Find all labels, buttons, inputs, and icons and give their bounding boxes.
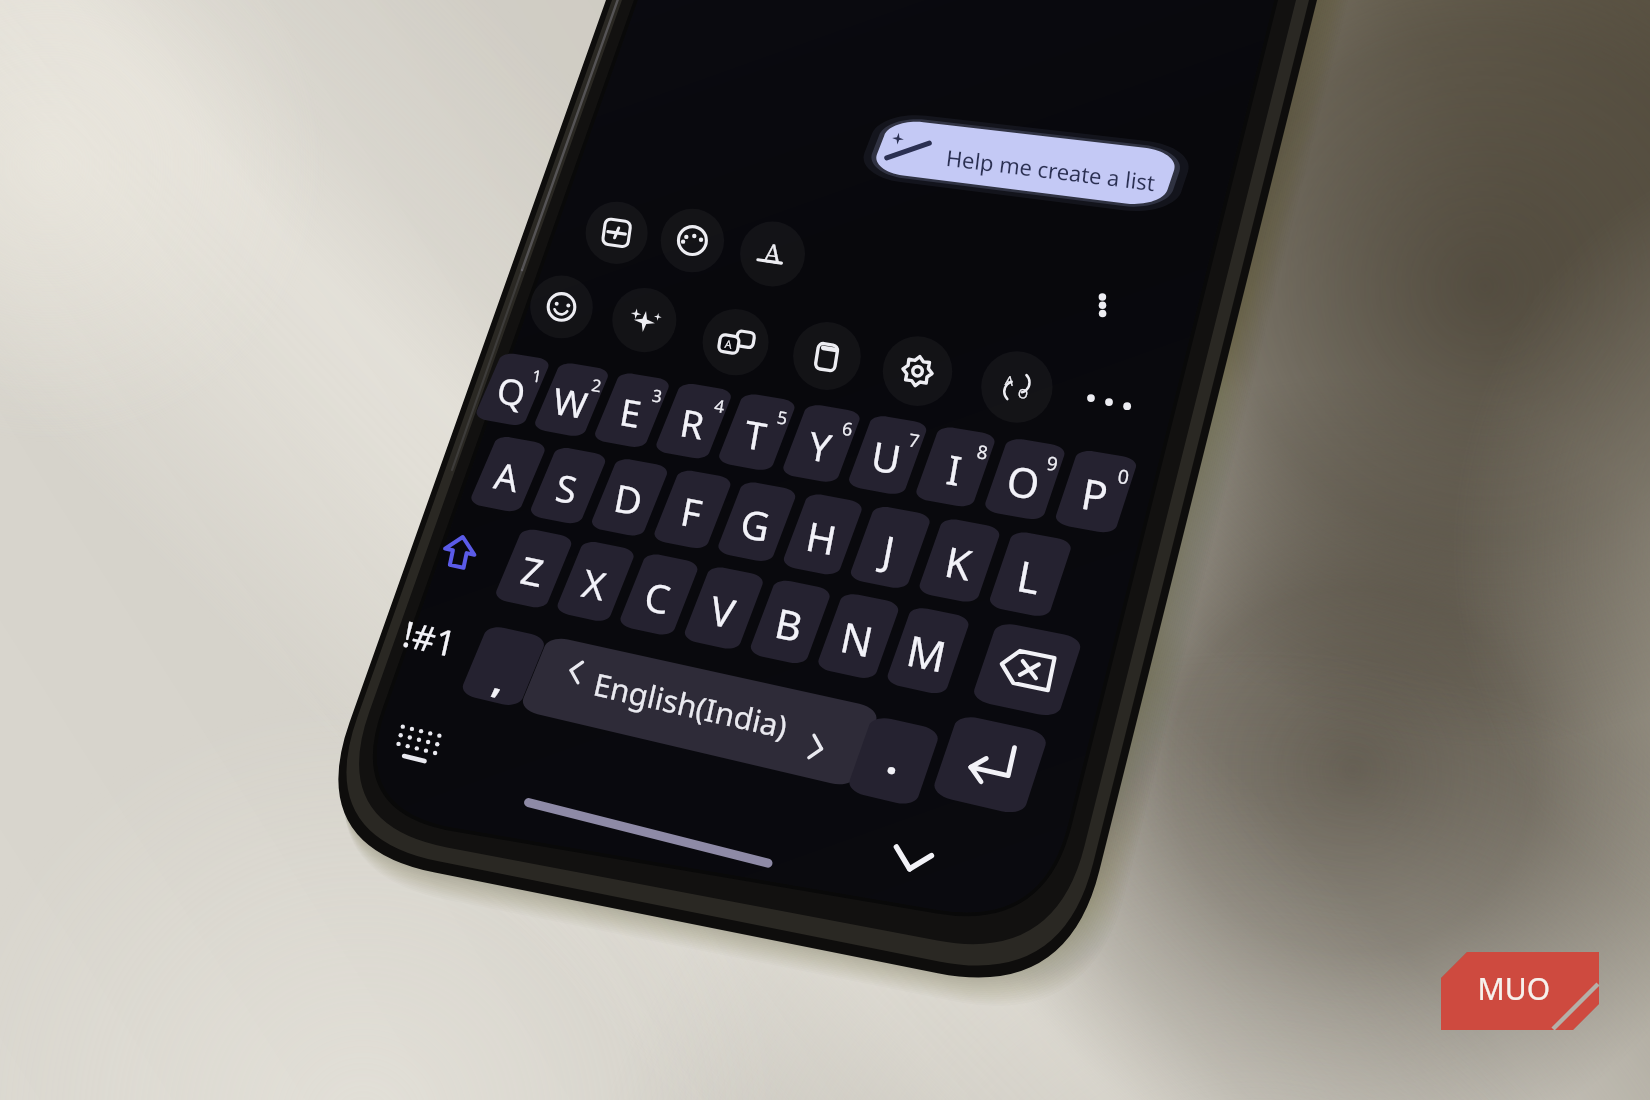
- button[interactable]: Backspace: [960, 620, 1080, 720]
- button[interactable]: Add content: [582, 200, 646, 264]
- button[interactable]: Home: [500, 780, 800, 870]
- button[interactable]: Shift: [420, 520, 492, 592]
- button[interactable]: Collapse keyboard: [862, 818, 962, 888]
- button[interactable]: AI suggestions: [612, 288, 676, 352]
- button[interactable]: Keyboard letters: [470, 350, 1130, 650]
- button[interactable]: Clipboard: [794, 324, 858, 388]
- button[interactable]: More options: [1072, 274, 1128, 338]
- button[interactable]: Settings: [886, 340, 950, 404]
- button[interactable]: MUO watermark: [1432, 944, 1608, 1040]
- button[interactable]: Help me create a list: [856, 108, 1184, 204]
- button[interactable]: Translate: [982, 354, 1046, 418]
- button[interactable]: Comma: [460, 620, 540, 710]
- button[interactable]: Emoji: [528, 276, 592, 340]
- button[interactable]: Text formatting: [742, 222, 806, 286]
- button[interactable]: Hide keyboard: [380, 710, 460, 780]
- button[interactable]: Image translate: [702, 310, 766, 374]
- button[interactable]: Symbols: [386, 604, 464, 672]
- button[interactable]: Period: [848, 712, 936, 800]
- button[interactable]: Themes: [660, 208, 724, 272]
- button[interactable]: Space, English (India): [540, 640, 900, 770]
- button[interactable]: More keyboard options: [1078, 372, 1138, 420]
- button[interactable]: Enter: [936, 718, 1048, 814]
